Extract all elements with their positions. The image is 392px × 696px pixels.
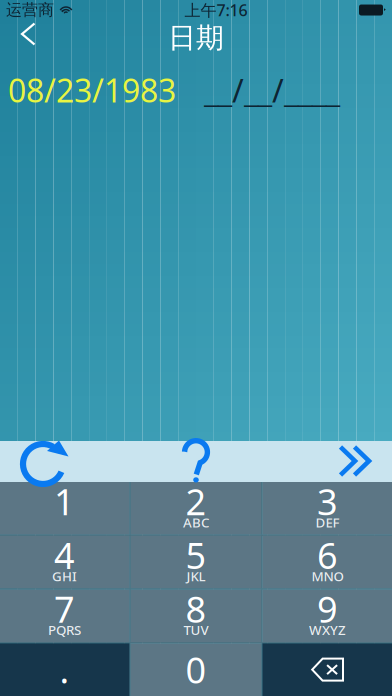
button[interactable]: 7 [0,589,130,642]
staticText: 9 [317,585,338,633]
button[interactable]: 5 [131,536,261,589]
staticText: 上午7:16 [184,0,247,21]
staticText: 7 [54,585,75,633]
button[interactable]: Next [261,441,392,482]
staticText: DEF [316,513,340,531]
staticText: . [59,646,69,693]
staticText: 2 [185,477,206,525]
staticText: 1 [54,477,75,525]
staticText: JKL [186,567,205,585]
button[interactable]: Help [130,441,261,482]
staticText: TUV [183,621,208,639]
staticText: 4 [54,531,75,579]
staticText: __/__/____ [204,69,340,111]
staticText: MNO [312,567,344,585]
button[interactable]: 9 [262,589,392,642]
staticText: PQRS [48,621,81,639]
staticText: 08/23/1983 [8,69,176,111]
staticText: GHI [52,567,77,585]
button[interactable]: 4 [0,536,130,589]
staticText: 3 [317,477,338,525]
staticText: ABC [183,513,209,531]
button[interactable]: 8 [131,589,261,642]
button[interactable]: Refresh [0,441,130,482]
staticText: 日期 [168,21,224,55]
staticText: 运营商 [6,0,54,20]
button[interactable]: 1 [0,482,130,535]
staticText: WXYZ [309,621,346,639]
staticText: 0 [185,646,206,693]
staticText: 8 [185,585,206,633]
button[interactable]: 3 [262,482,392,535]
button[interactable]: . [0,643,130,696]
button[interactable]: Delete [262,643,392,696]
button[interactable]: 6 [262,536,392,589]
button[interactable]: 0 [131,643,261,696]
button[interactable]: 2 [131,482,261,535]
staticText: 5 [185,531,206,579]
button[interactable]: Back [0,20,53,56]
staticText: 6 [317,531,338,579]
